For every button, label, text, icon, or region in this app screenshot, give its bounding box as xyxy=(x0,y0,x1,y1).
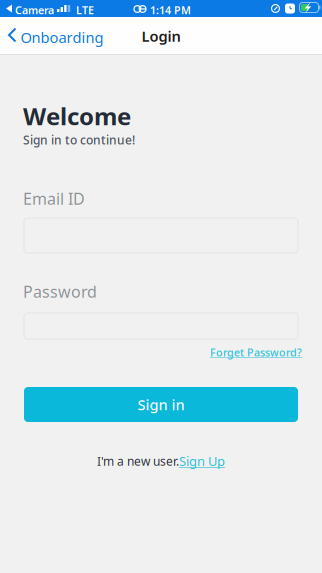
staticText: 1:14 PM xyxy=(150,3,191,17)
staticText: LTE xyxy=(76,3,94,17)
staticText: I'm a new user. xyxy=(97,453,179,469)
staticText: Login xyxy=(141,26,180,46)
staticText: Onboarding xyxy=(20,27,103,47)
staticText: Sign in xyxy=(137,395,184,414)
button[interactable]: Sign in xyxy=(24,387,298,422)
staticText: Email ID xyxy=(23,188,85,209)
staticText: Forget Password? xyxy=(210,345,302,359)
staticText: Password xyxy=(23,281,97,302)
button[interactable]: Onboarding xyxy=(0,17,104,55)
staticText: Camera xyxy=(15,3,54,17)
staticText: Sign Up xyxy=(179,452,225,470)
button[interactable]: Forget Password? xyxy=(192,341,302,359)
staticText: Sign in to continue! xyxy=(23,132,135,148)
staticText: Welcome xyxy=(23,100,131,132)
button[interactable]: Sign Up xyxy=(179,452,225,470)
